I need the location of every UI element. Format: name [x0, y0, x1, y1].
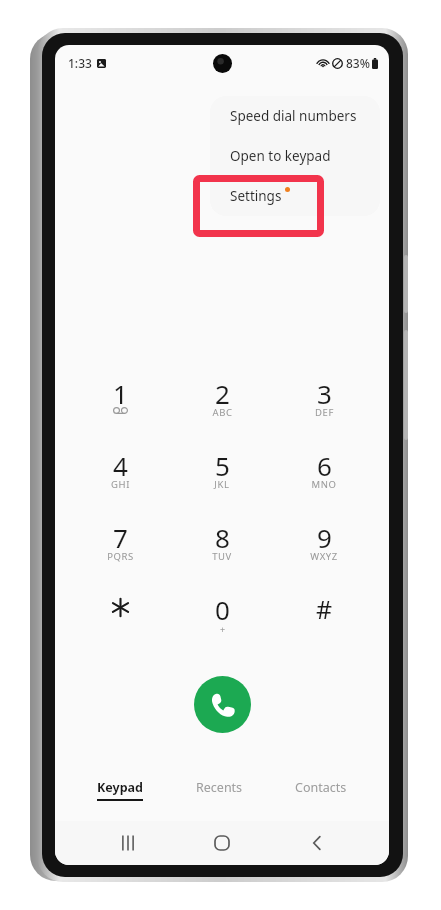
button[interactable]: Speed dial numbers: [210, 96, 380, 136]
staticText: Recents: [196, 779, 243, 796]
staticText: MNO: [311, 478, 337, 491]
button[interactable]: Keypad: [87, 775, 153, 805]
button[interactable]: 1: [83, 376, 157, 428]
button[interactable]: 5: [185, 448, 259, 500]
staticText: DEF: [315, 406, 334, 419]
staticText: Open to keypad: [230, 147, 331, 165]
staticText: TUV: [212, 550, 232, 563]
button[interactable]: Recent apps: [106, 821, 150, 865]
staticText: GHI: [111, 478, 130, 491]
button[interactable]: Open to keypad: [210, 136, 380, 176]
staticText: WXYZ: [310, 550, 338, 563]
staticText: Keypad: [97, 779, 143, 796]
button[interactable]: Contacts: [285, 775, 357, 800]
button[interactable]: Back: [295, 821, 339, 865]
button[interactable]: 8: [185, 520, 259, 572]
staticText: PQRS: [107, 550, 134, 563]
staticText: 5: [215, 448, 230, 478]
staticText: 8: [215, 520, 230, 550]
staticText: 1:33: [68, 55, 92, 71]
button[interactable]: 9: [287, 520, 361, 572]
staticText: Speed dial numbers: [230, 107, 357, 125]
button[interactable]: 0: [185, 592, 259, 644]
button[interactable]: 3: [287, 376, 361, 428]
staticText: 2: [215, 376, 230, 406]
button[interactable]: Recents: [186, 775, 253, 800]
staticText: #: [316, 592, 333, 622]
staticText: JKL: [214, 478, 230, 491]
button[interactable]: #: [287, 592, 361, 644]
button[interactable]: 7: [83, 520, 157, 572]
button[interactable]: Settings: [210, 176, 380, 216]
staticText: Settings: [230, 187, 282, 205]
staticText: 1: [113, 376, 128, 406]
staticText: Contacts: [295, 779, 347, 796]
staticText: +: [220, 623, 226, 635]
button[interactable]: Call: [194, 676, 251, 733]
staticText: 3: [317, 376, 332, 406]
button[interactable]: 4: [83, 448, 157, 500]
staticText: 83%: [346, 55, 370, 71]
button[interactable]: Home: [200, 821, 244, 865]
staticText: 0: [215, 592, 230, 622]
staticText: ABC: [212, 406, 233, 419]
staticText: 6: [317, 448, 332, 478]
staticText: 7: [113, 520, 128, 550]
staticText: 9: [317, 520, 332, 550]
button[interactable]: 6: [287, 448, 361, 500]
staticText: 4: [113, 448, 128, 478]
button[interactable]: 2: [185, 376, 259, 428]
button[interactable]: [83, 592, 157, 644]
